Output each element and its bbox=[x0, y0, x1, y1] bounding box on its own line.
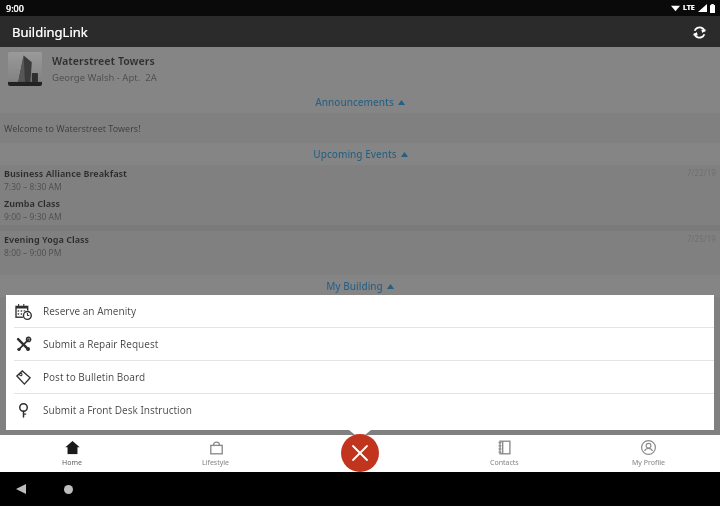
staticText: 8:00 – 9:00 PM bbox=[4, 247, 62, 259]
staticText: Waterstreet Towers bbox=[52, 54, 155, 68]
staticText: 7:30 – 8:30 AM bbox=[4, 181, 62, 193]
button[interactable]: Close menu bbox=[341, 434, 379, 472]
button[interactable]: Business Alliance Breakfast bbox=[0, 165, 720, 195]
button[interactable]: Reserve an Amenity bbox=[6, 295, 714, 327]
staticText: My Profile bbox=[632, 458, 665, 468]
staticText: Submit a Front Desk Instruction bbox=[43, 403, 192, 417]
button[interactable]: Home bbox=[57, 478, 79, 500]
button[interactable]: Lifestyle bbox=[144, 435, 288, 472]
button[interactable]: Submit a Front Desk Instruction bbox=[6, 394, 714, 426]
button[interactable]: Refresh bbox=[684, 17, 714, 47]
staticText: 7/25/19 bbox=[687, 233, 716, 244]
button[interactable]: Post to Bulletin Board bbox=[6, 361, 714, 393]
button[interactable]: Back bbox=[10, 478, 32, 500]
staticText: George Walsh - Apt. 2A bbox=[52, 71, 157, 84]
staticText: Announcements bbox=[315, 95, 394, 109]
button[interactable]: My Building bbox=[0, 275, 720, 297]
button[interactable]: Evening Yoga Class bbox=[0, 231, 720, 261]
button[interactable]: Welcome to Waterstreet Towers! bbox=[0, 113, 720, 143]
staticText: Reserve an Amenity bbox=[43, 304, 136, 318]
button[interactable]: My Profile bbox=[576, 435, 720, 472]
staticText: Home bbox=[62, 458, 82, 468]
staticText: Evening Yoga Class bbox=[4, 233, 90, 245]
staticText: My Building bbox=[326, 279, 383, 293]
button[interactable]: Zumba Class bbox=[0, 195, 720, 225]
button[interactable]: Contacts bbox=[432, 435, 576, 472]
staticText: Zumba Class bbox=[4, 197, 61, 209]
staticText: Contacts bbox=[490, 458, 519, 468]
staticText: Post to Bulletin Board bbox=[43, 370, 146, 384]
staticText: 9:00 – 9:30 AM bbox=[4, 211, 62, 223]
staticText: Upcoming Events bbox=[313, 147, 397, 161]
staticText: Business Alliance Breakfast bbox=[4, 167, 127, 179]
staticText: Welcome to Waterstreet Towers! bbox=[4, 122, 141, 134]
button[interactable]: Waterstreet Towers bbox=[0, 47, 720, 91]
staticText: BuildingLink bbox=[12, 23, 88, 41]
button[interactable]: Announcements bbox=[0, 91, 720, 113]
staticText: 7/22/19 bbox=[687, 167, 716, 178]
staticText: 9:00 bbox=[6, 2, 24, 14]
staticText: Submit a Repair Request bbox=[43, 337, 159, 351]
button[interactable]: Home bbox=[0, 435, 144, 472]
staticText: Lifestyle bbox=[202, 458, 230, 468]
staticText: LTE bbox=[683, 3, 695, 13]
button[interactable]: Submit a Repair Request bbox=[6, 328, 714, 360]
button[interactable]: Upcoming Events bbox=[0, 143, 720, 165]
